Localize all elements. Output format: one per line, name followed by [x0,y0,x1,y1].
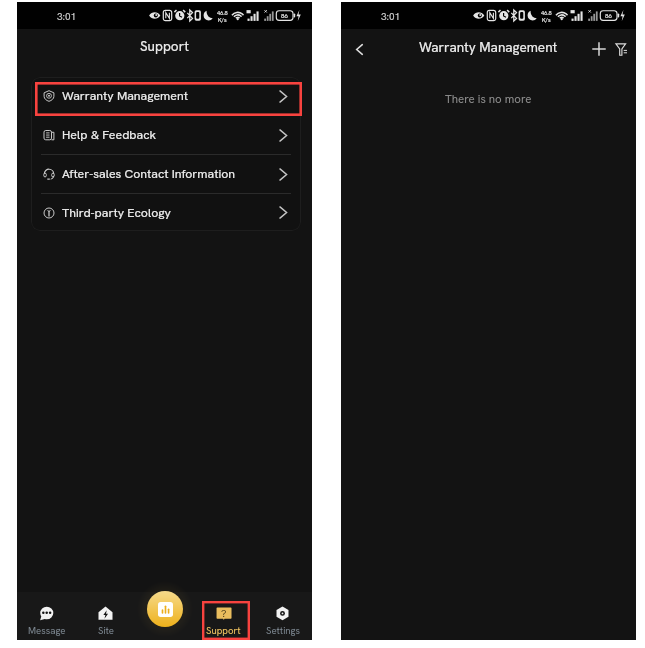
button[interactable]: Third-party Ecology [31,194,301,231]
button[interactable]: Site [76,592,135,640]
button[interactable]: Statistics [147,591,183,627]
staticText: 46.8 [217,9,228,16]
staticText: 3:01 [381,10,401,23]
staticText: 3:01 [57,10,77,23]
button[interactable]: Filter [611,39,631,59]
button[interactable]: Settings [253,592,312,640]
button[interactable]: Statistics [135,592,194,640]
staticText: 86 [605,12,612,20]
button[interactable]: After-sales Contact Information [31,155,301,193]
staticText: K/s [542,16,551,23]
staticText: ? [221,606,227,620]
staticText: Warranty Management [62,88,188,104]
button[interactable]: Warranty Management [31,77,301,115]
staticText: Support [206,624,241,637]
button[interactable]: Help & Feedback [31,116,301,154]
staticText: K/s [218,16,227,23]
staticText: Settings [266,624,300,637]
staticText: Message [28,624,66,637]
button[interactable]: ? [194,592,253,640]
staticText: Warranty Management [419,38,558,56]
staticText: After-sales Contact Information [62,166,235,182]
staticText: 46.8 [541,9,552,16]
button[interactable]: Back [349,39,369,59]
staticText: Site [98,624,114,637]
staticText: Support [140,37,189,55]
staticText: Third-party Ecology [62,205,171,221]
staticText: There is no more [445,91,532,106]
button[interactable]: Add [589,39,609,59]
staticText: Help & Feedback [62,127,157,143]
button[interactable]: Message [17,592,76,640]
staticText: 86 [281,12,288,20]
